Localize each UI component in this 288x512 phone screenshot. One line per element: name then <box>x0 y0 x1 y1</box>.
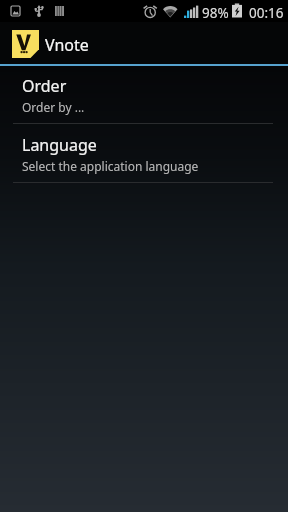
button[interactable]: Vnote <box>0 23 101 65</box>
staticText: Vnote <box>45 34 89 56</box>
staticText: Language <box>22 134 97 156</box>
staticText: 00:16 <box>249 4 284 22</box>
staticText: 98% <box>202 4 229 22</box>
button[interactable]: Order <box>0 66 288 123</box>
staticText: Select the application language <box>22 158 199 174</box>
staticText: Order by ... <box>22 99 85 115</box>
staticText: Order <box>22 75 67 97</box>
button[interactable]: Language <box>0 125 288 182</box>
